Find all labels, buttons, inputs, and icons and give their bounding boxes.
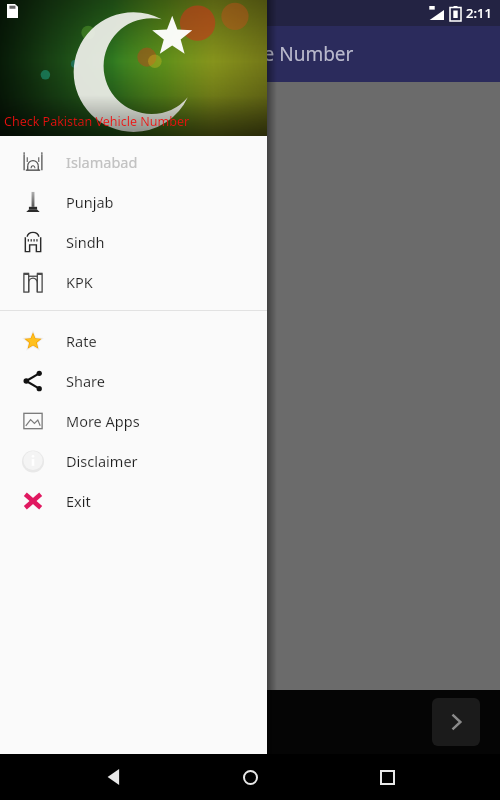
button[interactable]: Home bbox=[227, 754, 273, 800]
staticText: More Apps bbox=[66, 411, 140, 431]
staticText: Punjab bbox=[66, 192, 114, 212]
button[interactable]: Share bbox=[0, 361, 267, 401]
button[interactable]: Next bbox=[432, 698, 480, 746]
button[interactable]: Punjab bbox=[0, 182, 267, 222]
button[interactable]: Islamabad bbox=[0, 142, 267, 182]
button[interactable]: Disclaimer bbox=[0, 441, 267, 481]
button[interactable]: Sindh bbox=[0, 222, 267, 262]
staticText: KPK bbox=[66, 272, 93, 292]
button[interactable]: KPK bbox=[0, 262, 267, 302]
button[interactable]: Rate bbox=[0, 321, 267, 361]
staticText: Exit bbox=[66, 491, 91, 511]
button[interactable]: Exit bbox=[0, 481, 267, 521]
staticText: Disclaimer bbox=[66, 451, 138, 471]
staticText: Check Pakistan Vehicle Number bbox=[4, 113, 190, 130]
staticText: Share bbox=[66, 371, 105, 391]
staticText: Islamabad bbox=[66, 152, 138, 172]
button[interactable]: Back bbox=[91, 754, 137, 800]
button[interactable]: Recents bbox=[364, 754, 410, 800]
button[interactable]: Check Pakistan Vehicle Number bbox=[0, 0, 267, 136]
staticText: Check Pakistan Vehicle Number bbox=[72, 41, 354, 67]
staticText: Rate bbox=[66, 331, 97, 351]
button[interactable]: More Apps bbox=[0, 401, 267, 441]
staticText: Sindh bbox=[66, 232, 105, 252]
staticText: 2:11 bbox=[466, 4, 492, 22]
